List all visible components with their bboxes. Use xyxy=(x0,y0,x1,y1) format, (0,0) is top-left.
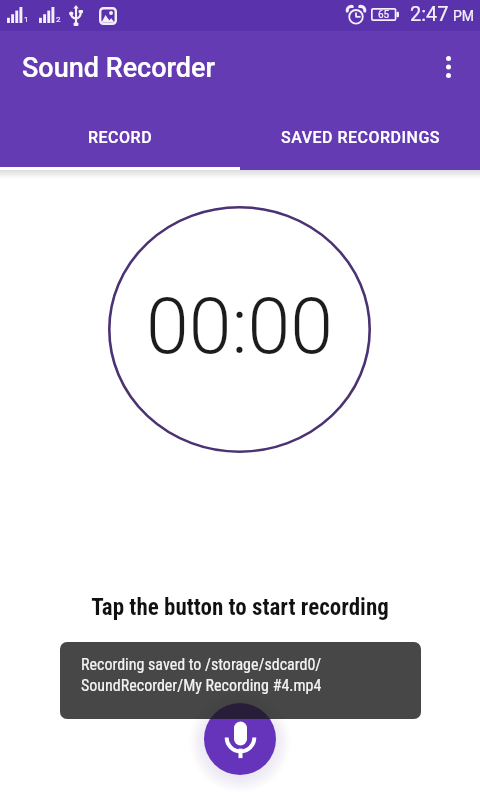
staticText: 2 xyxy=(56,15,61,24)
staticText: PM xyxy=(453,8,475,24)
staticText: SoundRecorder/My Recording #4.mp4 xyxy=(81,676,322,695)
staticText: RECORD xyxy=(88,128,153,147)
button[interactable]: RECORD xyxy=(0,103,240,170)
button[interactable]: Start recording xyxy=(204,703,276,775)
staticText: Sound Recorder xyxy=(22,52,216,84)
staticText: 2:47 xyxy=(410,2,449,25)
button[interactable]: SAVED RECORDINGS xyxy=(240,103,480,170)
staticText: Tap the button to start recording xyxy=(91,594,389,621)
staticText: 00:00 xyxy=(146,282,334,372)
staticText: 65 xyxy=(378,9,390,21)
staticText: SAVED RECORDINGS xyxy=(281,128,440,147)
staticText: Recording saved to /storage/sdcard0/ xyxy=(81,655,322,674)
staticText: 1 xyxy=(24,15,29,24)
button[interactable]: More options xyxy=(428,47,468,87)
